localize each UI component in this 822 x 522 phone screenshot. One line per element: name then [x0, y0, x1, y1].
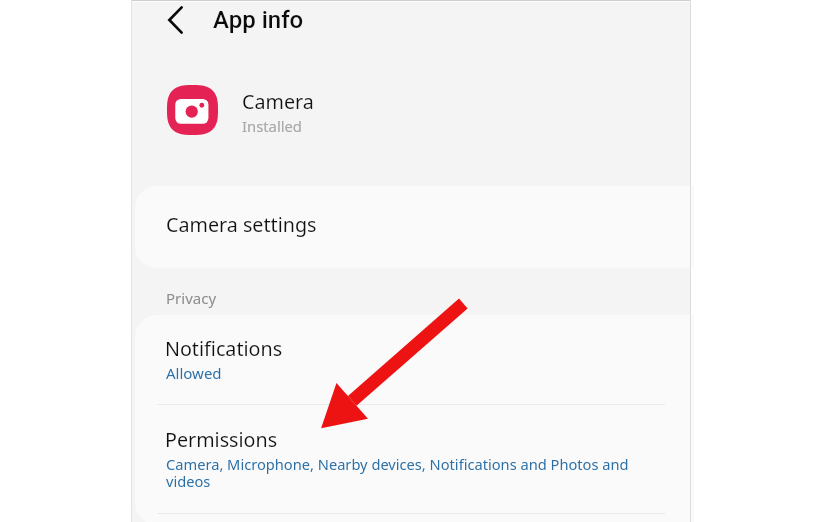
staticText: Camera settings [166, 211, 317, 238]
staticText: Privacy [166, 288, 217, 308]
button[interactable]: Notifications [135, 315, 694, 405]
staticText: App info [213, 6, 304, 34]
button[interactable]: Navigate up [150, 0, 202, 40]
staticText: Installed [242, 116, 302, 136]
button[interactable]: Camera settings [135, 186, 694, 268]
button[interactable]: Permissions [135, 405, 694, 514]
staticText: Allowed [166, 363, 222, 383]
staticText: Notifications [165, 335, 283, 362]
staticText: Permissions [165, 426, 278, 453]
staticText: Camera [242, 88, 314, 115]
staticText: Camera, Microphone, Nearby devices, Noti… [166, 454, 634, 491]
